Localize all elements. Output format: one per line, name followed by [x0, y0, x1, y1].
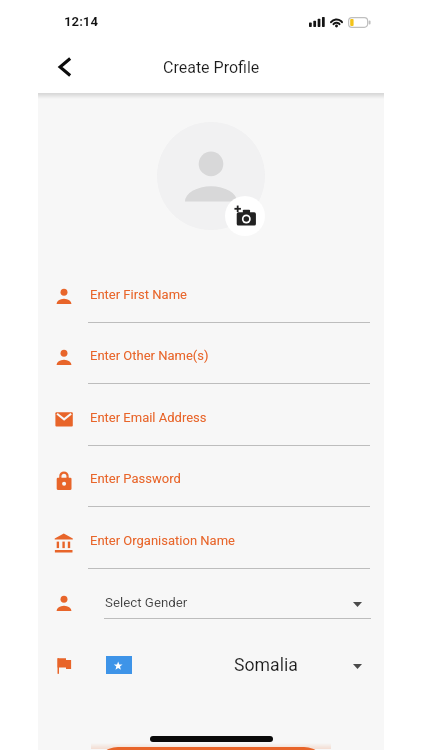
staticText: Enter Other Name(s) [90, 348, 209, 363]
button[interactable]: Add photo [225, 196, 265, 236]
staticText: Somalia [234, 655, 298, 676]
staticText: Select Gender [105, 595, 188, 611]
button[interactable]: Profile photo [157, 122, 265, 230]
button[interactable]: Back [45, 48, 83, 86]
staticText: Enter Organisation Name [90, 533, 235, 548]
button[interactable]: Select Gender [38, 590, 384, 633]
button[interactable]: Enter Other Name(s) [38, 344, 384, 387]
staticText: Enter Email Address [90, 410, 207, 425]
staticText: 12:14 [64, 14, 98, 29]
button[interactable]: Enter First Name [38, 283, 384, 326]
button[interactable]: Enter Password [38, 467, 384, 510]
button[interactable]: Submit [95, 747, 327, 750]
staticText: Enter First Name [90, 287, 187, 302]
staticText: Enter Password [90, 471, 181, 486]
button[interactable]: Enter Email Address [38, 406, 384, 449]
button[interactable]: Enter Organisation Name [38, 529, 384, 572]
staticText: Create Profile [163, 58, 260, 77]
button[interactable]: Somalia [38, 652, 384, 690]
